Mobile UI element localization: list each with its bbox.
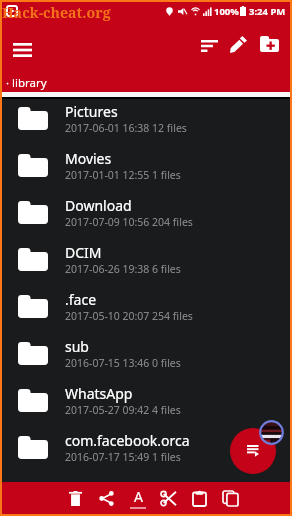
staticText: 2017-05-27 09:42 4 files — [65, 403, 181, 417]
staticText: 2016-07-17 15:49 1 files — [65, 450, 181, 464]
staticText: com.facebook.orca — [65, 431, 190, 450]
staticText: sub — [65, 337, 89, 356]
button[interactable]: com.facebook.orca — [2, 424, 290, 471]
button[interactable]: sub — [2, 330, 290, 377]
staticText: Hack-cheat.org — [2, 3, 111, 22]
button[interactable]: Playlist — [230, 428, 276, 474]
button[interactable]: Share — [91, 482, 122, 514]
button[interactable]: Menu — [4, 32, 40, 68]
button[interactable]: New folder — [251, 26, 287, 62]
button[interactable]: Paste — [184, 482, 215, 514]
staticText: 2017-06-01 16:38 12 files — [65, 121, 187, 135]
button[interactable]: DCIM — [2, 236, 290, 283]
staticText: 2017-07-09 10:56 204 files — [65, 215, 193, 229]
staticText: Download — [65, 196, 132, 215]
staticText: Pictures — [65, 102, 118, 121]
staticText: Movies — [65, 149, 112, 168]
staticText: DCIM — [65, 243, 102, 262]
staticText: 2017-06-26 19:38 6 files — [65, 262, 181, 276]
staticText: A — [134, 487, 143, 506]
button[interactable]: .face — [2, 283, 290, 330]
button[interactable]: · library — [2, 69, 290, 92]
staticText: WhatsApp — [65, 384, 133, 403]
button[interactable]: WhatsApp — [2, 377, 290, 424]
staticText: 3:24 PM — [249, 5, 286, 18]
staticText: 100% — [214, 5, 239, 18]
staticText: 2016-07-15 13:46 0 files — [65, 356, 181, 370]
staticText: 2017-05-10 20:07 254 files — [65, 309, 193, 323]
button[interactable]: Pictures — [2, 95, 290, 142]
staticText: · library — [6, 75, 47, 91]
button[interactable]: Sort — [191, 28, 227, 64]
button[interactable]: Movies — [2, 142, 290, 189]
button[interactable]: Rename — [122, 482, 153, 514]
staticText: 2017-01-01 12:55 1 files — [65, 168, 181, 182]
button[interactable]: Edit — [220, 26, 257, 63]
button[interactable]: Download — [2, 189, 290, 236]
button[interactable]: Copy — [215, 482, 246, 514]
button[interactable]: Cut — [153, 482, 184, 514]
button[interactable]: Delete — [60, 482, 91, 514]
staticText: .face — [65, 290, 97, 309]
